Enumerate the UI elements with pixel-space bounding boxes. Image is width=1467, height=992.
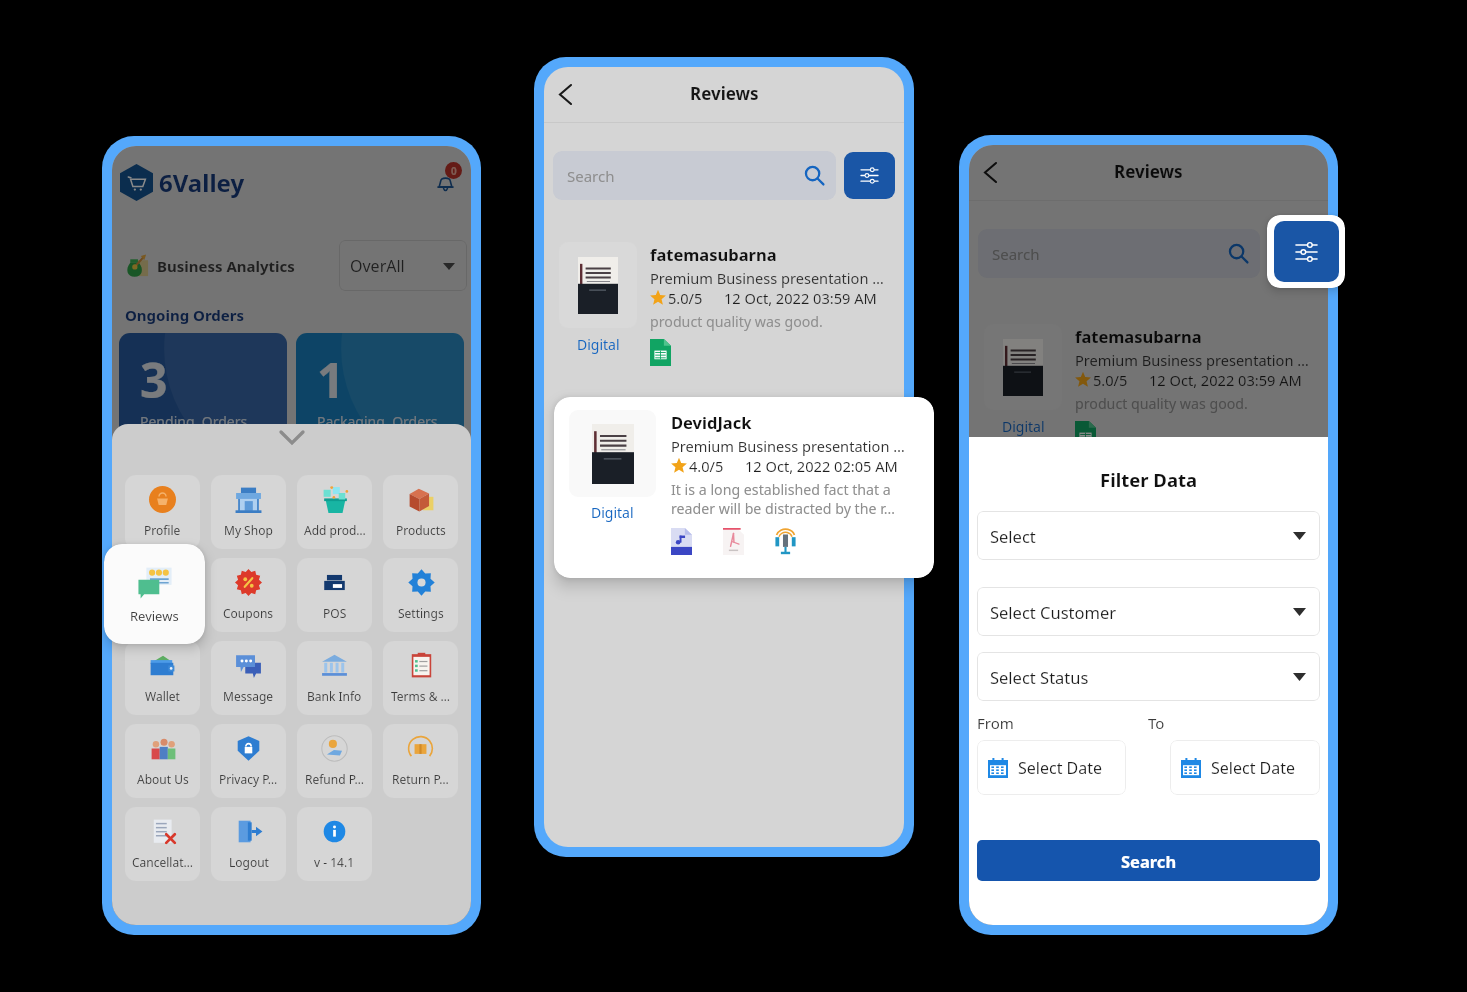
staticText: Packaging Orders	[317, 412, 438, 431]
staticText: product quality was good.	[650, 312, 823, 331]
staticText: Products	[396, 522, 446, 538]
button[interactable]: Select	[977, 511, 1320, 560]
staticText: 1	[317, 347, 345, 412]
staticText: 12 Oct, 2022 03:59 AM	[1149, 370, 1302, 390]
button[interactable]: Cancellat…	[125, 807, 200, 881]
button[interactable]: Add prod…	[297, 475, 372, 549]
staticText: From	[977, 713, 1148, 733]
button[interactable]	[125, 558, 200, 632]
button[interactable]: Reviews	[104, 544, 205, 644]
staticText: Select Status	[990, 666, 1089, 688]
button[interactable]: Coupons	[211, 558, 286, 632]
staticText: Terms & …	[391, 688, 451, 704]
button[interactable]: Search	[977, 840, 1320, 881]
staticText: fatemasubarna	[650, 243, 777, 265]
staticText: Digital	[1002, 417, 1045, 436]
button[interactable]: 1	[296, 333, 464, 438]
button[interactable]: Logout	[211, 807, 286, 881]
staticText: Profile	[144, 522, 181, 538]
staticText: Coupons	[223, 605, 274, 621]
staticText: About Us	[137, 771, 189, 787]
staticText: 12 Oct, 2022 02:05 AM	[745, 456, 898, 476]
button[interactable]: Select Status	[977, 652, 1320, 701]
staticText: Search	[1121, 850, 1177, 872]
button[interactable]: Profile	[125, 475, 200, 549]
button[interactable]: Back	[971, 153, 1009, 191]
staticText: fatemasubarna	[1075, 325, 1202, 347]
staticText: 4.0/5	[689, 456, 724, 476]
button[interactable]: Digital	[554, 397, 934, 578]
staticText: Settings	[398, 605, 444, 621]
button[interactable]: Refund P…	[297, 724, 372, 798]
button[interactable]: Settings	[383, 558, 458, 632]
button[interactable]: Search	[553, 151, 836, 200]
staticText: Pending Orders	[140, 412, 248, 431]
button[interactable]: Search	[978, 229, 1260, 278]
button[interactable]: OverAll	[339, 240, 467, 291]
button[interactable]: My Shop	[211, 475, 286, 549]
staticText: Business Analytics	[157, 256, 295, 276]
staticText: Bank Info	[307, 688, 362, 704]
button[interactable]: Back	[546, 75, 584, 113]
button[interactable]: sheet	[1075, 421, 1096, 448]
staticText: Reviews	[130, 607, 179, 625]
button[interactable]: About Us	[125, 724, 200, 798]
staticText: Select Date	[1018, 757, 1103, 779]
staticText: 0	[451, 164, 457, 178]
button[interactable]: Select Customer	[977, 587, 1320, 636]
staticText: 12 Oct, 2022 03:59 AM	[724, 288, 877, 308]
staticText: 6Valley	[159, 166, 245, 199]
staticText: Reviews	[1114, 160, 1183, 183]
button[interactable]: Return P…	[383, 724, 458, 798]
button[interactable]: Select Date	[977, 740, 1126, 795]
staticText: v - 14.1	[314, 854, 355, 870]
button[interactable]: Privacy P…	[211, 724, 286, 798]
staticText: My Shop	[224, 522, 273, 538]
button[interactable]: v - 14.1	[297, 807, 372, 881]
staticText: Search	[567, 166, 615, 186]
staticText: Add prod…	[304, 522, 366, 538]
button[interactable]: sheet	[650, 339, 671, 366]
staticText: Select	[990, 525, 1036, 547]
staticText: Logout	[229, 854, 269, 870]
staticText: DevidJack	[671, 411, 752, 433]
staticText: POS	[323, 605, 347, 621]
button[interactable]: 3	[119, 333, 287, 438]
button[interactable]: Wallet	[125, 641, 200, 715]
button[interactable]: Select Date	[1170, 740, 1320, 795]
staticText: Privacy P…	[219, 771, 278, 787]
staticText: OverAll	[350, 255, 405, 277]
staticText: Wallet	[145, 688, 180, 704]
staticText: To	[1148, 713, 1320, 733]
staticText: Message	[223, 688, 274, 704]
button[interactable]: POS	[297, 558, 372, 632]
button[interactable]: mp3	[671, 528, 692, 555]
staticText: 3	[140, 347, 168, 412]
staticText: Search	[992, 244, 1040, 264]
button[interactable]: audio	[775, 528, 796, 555]
staticText: Cancellat…	[132, 854, 194, 870]
button[interactable]: Digital	[969, 308, 1328, 448]
button[interactable]: pdf	[723, 528, 744, 555]
button[interactable]: Products	[383, 475, 458, 549]
staticText: Premium Business presentation …	[671, 436, 905, 456]
button[interactable]: Terms & …	[383, 641, 458, 715]
staticText: Select Customer	[990, 601, 1117, 623]
button[interactable]: Digital	[544, 226, 904, 366]
staticText: Premium Business presentation …	[650, 268, 884, 288]
staticText: Select Date	[1211, 757, 1296, 779]
staticText: Reviews	[690, 82, 759, 105]
staticText: Return P…	[392, 771, 449, 787]
staticText: 5.0/5	[668, 288, 703, 308]
staticText: Digital	[591, 503, 634, 522]
button[interactable]: Message	[211, 641, 286, 715]
button[interactable]: Bank Info	[297, 641, 372, 715]
staticText: It is a long established fact that a rea…	[671, 480, 926, 518]
staticText: Digital	[577, 335, 620, 354]
staticText: product quality was good.	[1075, 394, 1248, 413]
staticText: 5.0/5	[1093, 370, 1128, 390]
button[interactable]: Filter	[1274, 221, 1339, 282]
staticText: Premium Business presentation …	[1075, 350, 1309, 370]
staticText: Filter Data	[1100, 467, 1198, 492]
button[interactable]: Filter	[844, 152, 895, 199]
